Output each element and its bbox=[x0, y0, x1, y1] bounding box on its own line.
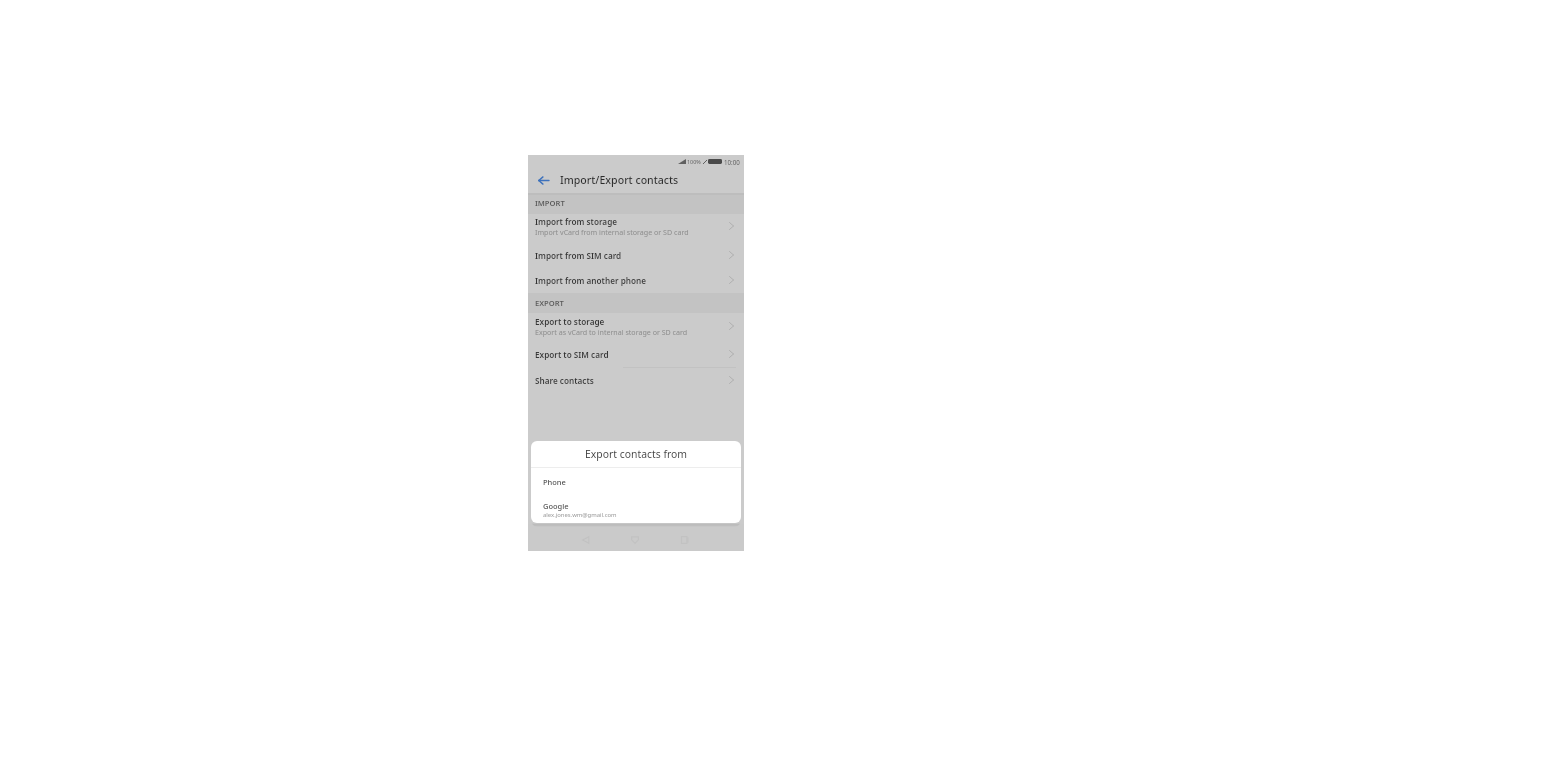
button[interactable]: Google bbox=[531, 499, 741, 523]
staticText: Import from SIM card bbox=[535, 250, 622, 261]
staticText: Export as vCard to internal storage or S… bbox=[535, 327, 688, 337]
button[interactable]: Back bbox=[535, 172, 551, 188]
staticText: alex.jones.wm@gmail.com bbox=[543, 511, 617, 519]
staticText: 10:00 bbox=[724, 158, 740, 166]
staticText: Import from another phone bbox=[535, 275, 647, 286]
button[interactable]: Import from storage bbox=[528, 211, 744, 241]
staticText: Import/Export contacts bbox=[560, 173, 679, 187]
staticText: Phone bbox=[543, 477, 566, 487]
staticText: Export to storage bbox=[535, 316, 605, 327]
staticText: EXPORT bbox=[535, 298, 564, 308]
staticText: IMPORT bbox=[535, 198, 565, 208]
staticText: Export to SIM card bbox=[535, 349, 609, 360]
button[interactable]: Share contacts bbox=[528, 368, 744, 392]
button[interactable]: Import from SIM card bbox=[528, 243, 744, 267]
staticText: 100% bbox=[687, 158, 701, 165]
staticText: Import vCard from internal storage or SD… bbox=[535, 227, 689, 237]
staticText: Import from storage bbox=[535, 216, 618, 227]
button[interactable]: Import from another phone bbox=[528, 268, 744, 292]
staticText: Google bbox=[543, 501, 569, 511]
staticText: Share contacts bbox=[535, 375, 594, 386]
staticText: Export contacts from bbox=[585, 447, 688, 461]
button[interactable]: Phone bbox=[531, 471, 741, 493]
button[interactable]: Export to SIM card bbox=[528, 342, 744, 366]
button[interactable]: Export to storage bbox=[528, 311, 744, 341]
